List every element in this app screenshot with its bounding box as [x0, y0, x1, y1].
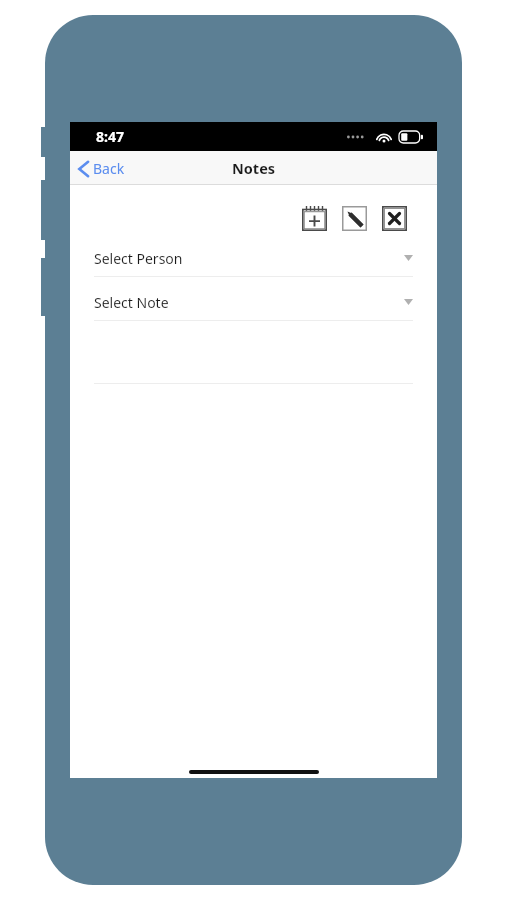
button[interactable]: Add note	[299, 203, 329, 233]
staticText: Select Note	[94, 293, 169, 312]
staticText: Select Person	[94, 249, 183, 268]
button[interactable]: Select Note	[70, 291, 437, 321]
button[interactable]: Select Person	[70, 247, 437, 277]
staticText: Notes	[232, 158, 276, 178]
button[interactable]: Delete note	[379, 203, 409, 233]
staticText: Back	[93, 159, 125, 178]
button[interactable]: Back	[70, 155, 135, 182]
button[interactable]: Edit note	[339, 203, 369, 233]
staticText: 8:47	[96, 127, 124, 146]
